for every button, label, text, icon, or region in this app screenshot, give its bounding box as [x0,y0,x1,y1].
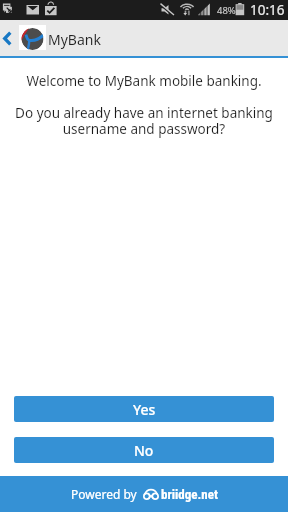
button[interactable]: No [14,437,274,463]
staticText: Welcome to MyBank mobile banking. [0,72,288,90]
staticText: MyBank [48,30,101,49]
staticText: 10:16 [250,1,285,19]
staticText: 48% [217,4,236,17]
staticText: Powered by [71,486,137,502]
staticText: briidge.net [161,487,218,502]
button[interactable]: Yes [14,396,274,422]
staticText: No [134,441,154,460]
staticText: Yes [133,400,156,419]
staticText: Do you already have an internet banking … [14,104,274,138]
button[interactable]: Back [0,20,15,56]
